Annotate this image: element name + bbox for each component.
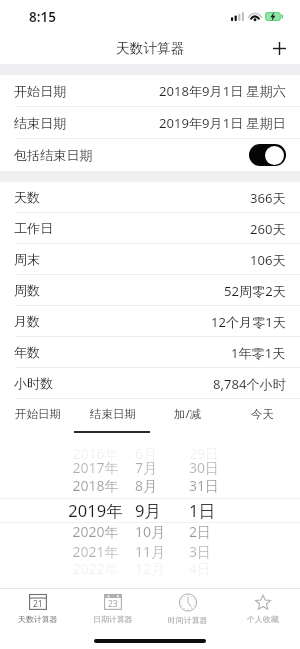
staticText: 2016年 [30, 444, 161, 463]
staticText: 10月 [135, 522, 166, 541]
staticText: 小时数 [14, 375, 54, 392]
staticText: 天数计算器 [18, 614, 58, 624]
staticText: 7月 [135, 458, 158, 477]
button[interactable]: 结束日期 [75, 400, 150, 428]
staticText: 包括结束日期 [14, 147, 93, 164]
button[interactable]: Add [266, 35, 292, 61]
staticText: 8:15 [29, 8, 56, 26]
button[interactable]: Include end date toggle [249, 144, 286, 166]
button[interactable]: 周末 [0, 244, 300, 275]
staticText: 3日 [189, 542, 212, 561]
staticText: 30日 [189, 458, 220, 477]
staticText: 2019年 [30, 499, 161, 522]
staticText: 106天 [250, 251, 286, 269]
button[interactable]: 开始日期 [0, 75, 300, 107]
staticText: 结束日期 [90, 407, 136, 421]
staticText: 8月 [135, 476, 158, 495]
staticText: 52周零2天 [224, 282, 286, 300]
button[interactable]: 加/减 [150, 400, 225, 428]
staticText: 21 [33, 598, 43, 610]
staticText: 9月 [135, 499, 161, 522]
staticText: 2018年 [30, 476, 161, 495]
button[interactable]: 工作日 [0, 213, 300, 244]
staticText: 29日 [189, 444, 220, 463]
button[interactable]: 23 [75, 589, 150, 625]
button[interactable]: 开始日期 [0, 400, 75, 428]
staticText: 2021年 [30, 542, 161, 561]
button[interactable]: 今天 [225, 400, 300, 428]
staticText: 4日 [189, 559, 212, 578]
button[interactable]: 周数 [0, 275, 300, 306]
staticText: 个人收藏 [247, 614, 279, 624]
button[interactable]: 年数 [0, 337, 300, 368]
button[interactable]: 月数 [0, 306, 300, 337]
staticText: 1日 [189, 499, 215, 522]
staticText: 366天 [250, 189, 286, 207]
staticText: 开始日期 [14, 83, 67, 100]
staticText: 2018年9月1日 星期六 [159, 82, 286, 100]
button[interactable]: 结束日期 [0, 107, 300, 139]
staticText: 周末 [14, 251, 41, 268]
staticText: 工作日 [14, 220, 54, 237]
staticText: 1年零1天 [231, 344, 286, 362]
button[interactable]: 个人收藏 [225, 589, 300, 625]
staticText: 结束日期 [14, 115, 67, 132]
button[interactable]: 天数 [0, 182, 300, 213]
staticText: 12个月零1天 [211, 313, 286, 331]
staticText: 12月 [135, 559, 166, 578]
staticText: 260天 [250, 220, 286, 238]
staticText: 月数 [14, 313, 41, 330]
staticText: 天数 [14, 189, 41, 206]
staticText: 天数计算器 [116, 40, 185, 57]
staticText: 11月 [135, 542, 166, 561]
staticText: 时间计算器 [168, 615, 208, 625]
staticText: 开始日期 [15, 407, 61, 421]
button[interactable]: 小时数 [0, 368, 300, 399]
staticText: 2020年 [30, 522, 161, 541]
button[interactable]: 21 [0, 589, 75, 625]
staticText: 日期计算器 [93, 614, 133, 624]
staticText: 2022年 [30, 559, 161, 578]
button[interactable]: 时间计算器 [150, 589, 225, 625]
staticText: 加/减 [174, 406, 202, 422]
staticText: 31日 [189, 476, 220, 495]
staticText: 2017年 [30, 458, 161, 477]
staticText: 23 [108, 598, 118, 610]
staticText: 2019年9月1日 星期日 [159, 114, 286, 132]
staticText: 6月 [135, 444, 158, 463]
staticText: 8,784个小时 [213, 375, 286, 393]
button[interactable]: 包括结束日期 [0, 139, 300, 171]
staticText: 2日 [189, 522, 212, 541]
staticText: 年数 [14, 344, 41, 361]
staticText: 周数 [14, 282, 41, 299]
staticText: 今天 [251, 407, 274, 421]
